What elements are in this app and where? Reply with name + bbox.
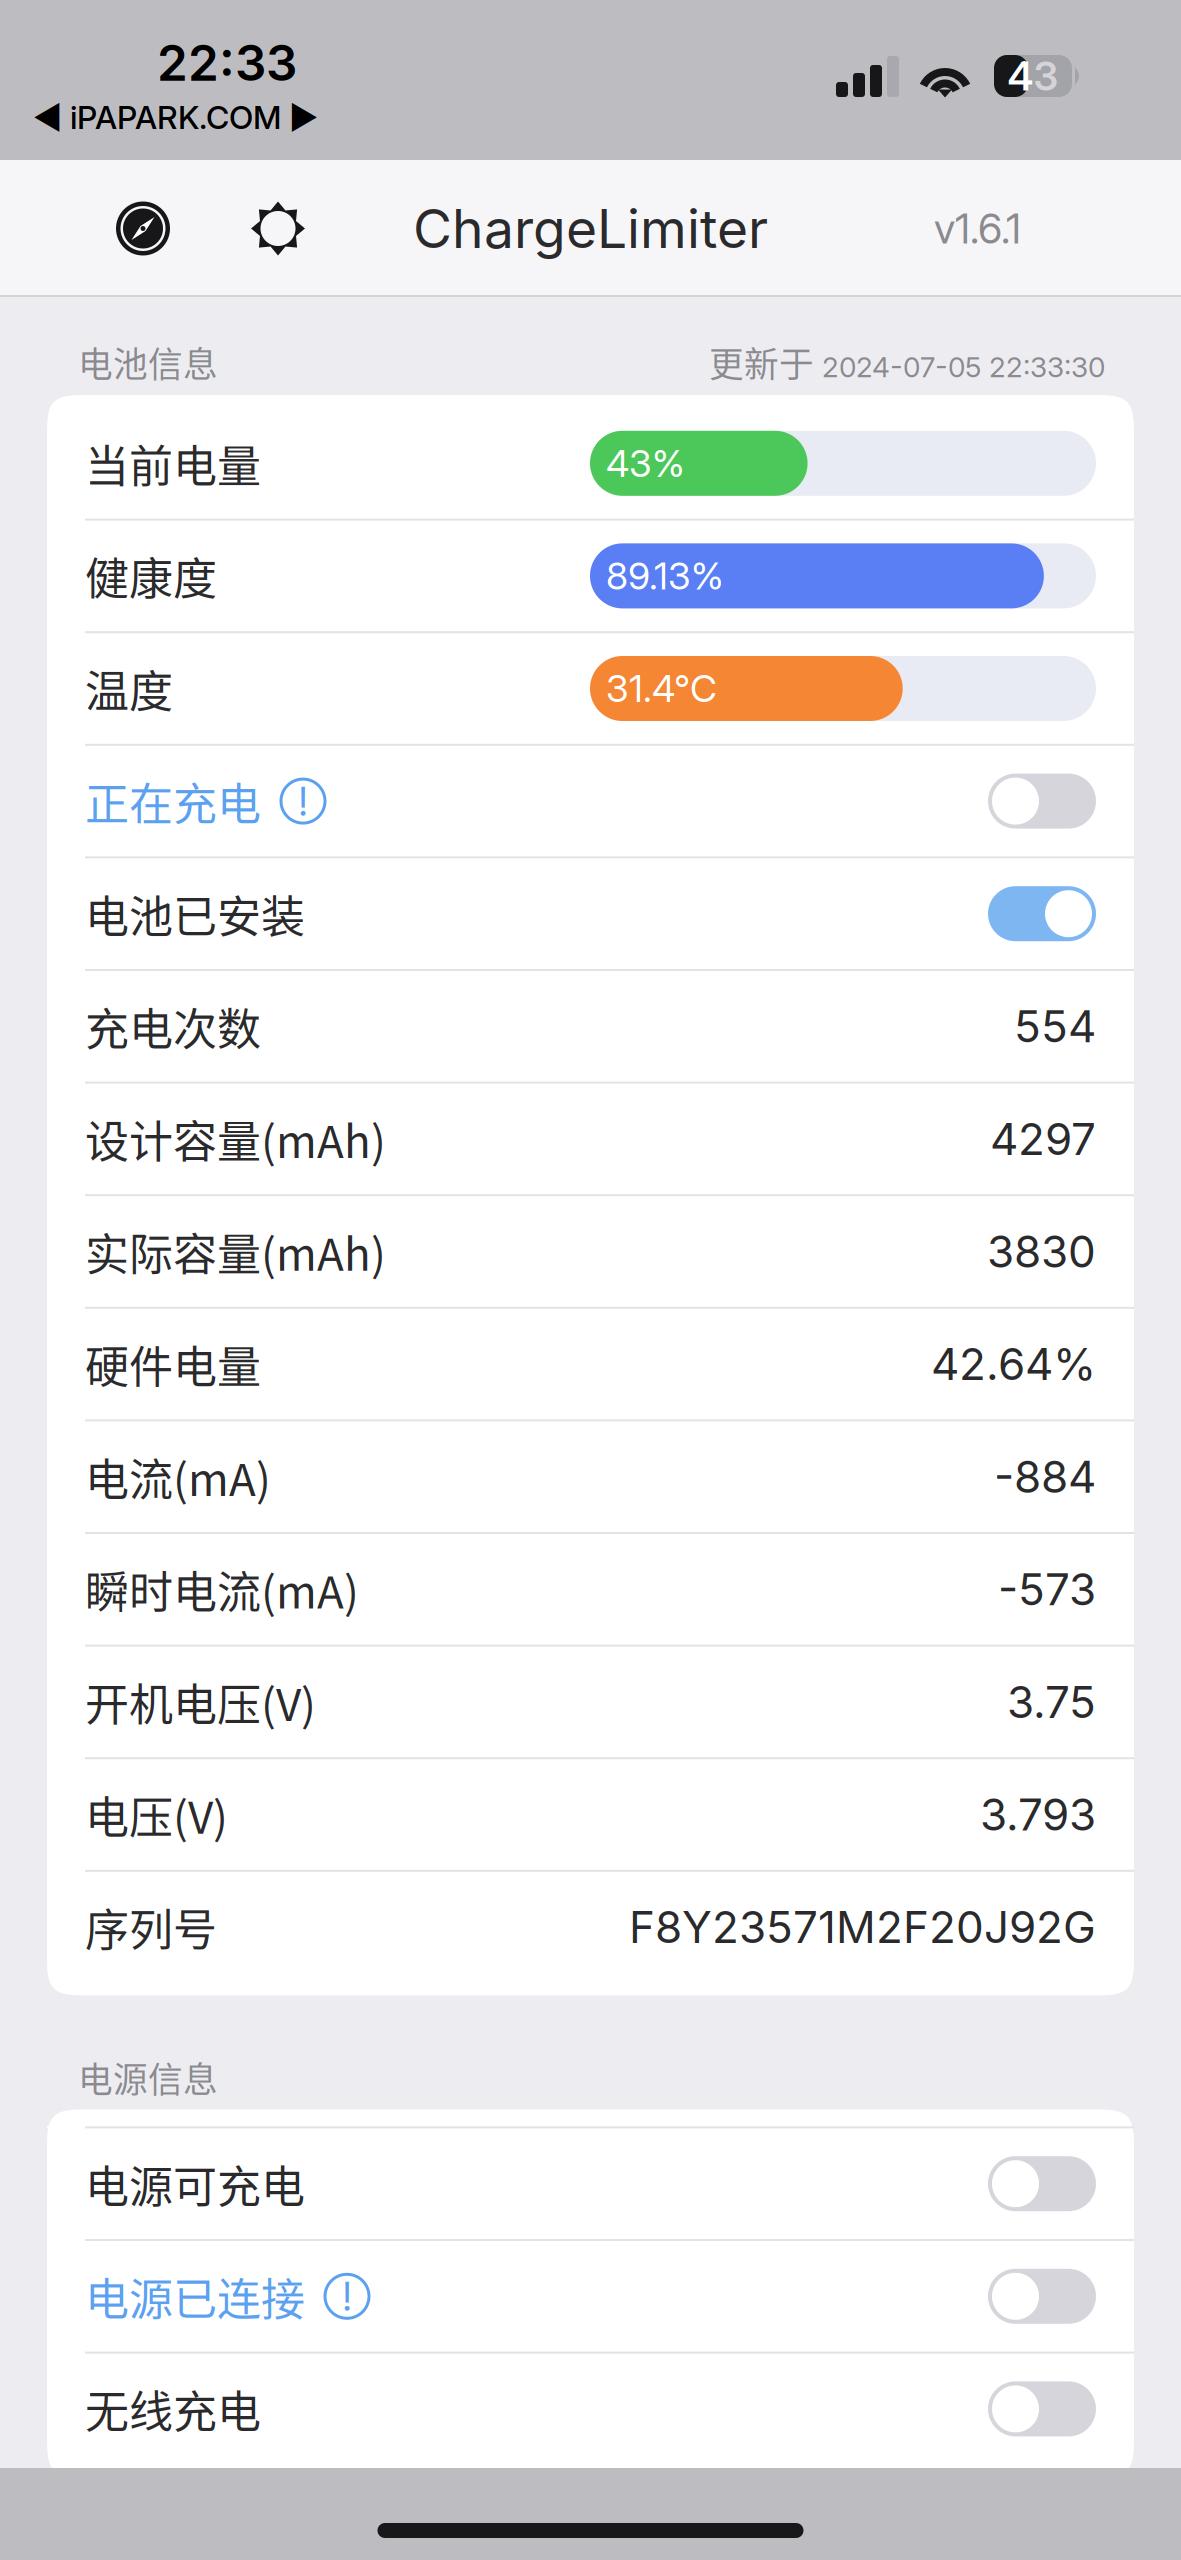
staticText: 电源已连接 xyxy=(85,2264,305,2328)
button[interactable]: 正在充电 xyxy=(47,746,1134,856)
staticText: 温度 xyxy=(85,657,173,720)
staticText: -884 xyxy=(994,1450,1096,1503)
button[interactable]: 电源可充电 xyxy=(47,2128,1134,2239)
staticText: 实际容量(mAh) xyxy=(85,1220,386,1283)
staticText: 序列号 xyxy=(85,1895,217,1959)
staticText: 瞬时电流(mA) xyxy=(85,1557,359,1621)
staticText: 设计容量(mAh) xyxy=(85,1107,386,1171)
staticText: 无线充电 xyxy=(85,2377,261,2441)
staticText: 22:33 xyxy=(157,33,297,93)
staticText: 更新于 xyxy=(709,337,814,387)
staticText: 电流(mA) xyxy=(85,1445,271,1508)
staticText: 43% xyxy=(606,441,685,486)
staticText: 42.64% xyxy=(931,1337,1096,1391)
button[interactable]: Browser xyxy=(90,168,196,288)
staticText: ! xyxy=(342,2272,351,2320)
staticText: 3830 xyxy=(987,1225,1096,1278)
staticText: 4 xyxy=(1007,52,1033,100)
staticText: 2024-07-05 22:33:30 xyxy=(814,350,1105,384)
button[interactable]: 无线充电 xyxy=(47,2354,1134,2464)
staticText: 电源信息 xyxy=(78,2052,218,2103)
staticText: ChargeLimiter xyxy=(413,196,768,261)
staticText: v1.6.1 xyxy=(934,203,1021,253)
staticText: 充电次数 xyxy=(85,994,261,1058)
staticText: 健康度 xyxy=(85,544,217,608)
staticText: F8Y23571M2F20J92G xyxy=(629,1900,1096,1954)
button[interactable]: 电池已安装 xyxy=(47,858,1134,969)
staticText: ◀ iPAPARK.COM ▶ xyxy=(33,98,318,137)
staticText: 电源可充电 xyxy=(85,2152,305,2215)
staticText: 开机电压(V) xyxy=(85,1670,316,1734)
staticText: 89.13% xyxy=(606,553,724,598)
button[interactable]: 电源已连接 xyxy=(47,2241,1134,2352)
staticText: -573 xyxy=(998,1563,1096,1616)
staticText: 电压(V) xyxy=(85,1783,228,1846)
staticText: 硬件电量 xyxy=(85,1332,261,1396)
staticText: 3.793 xyxy=(980,1788,1096,1841)
staticText: 3 xyxy=(1033,52,1058,100)
button[interactable]: Brightness xyxy=(225,168,331,288)
staticText: ! xyxy=(298,777,307,825)
staticText: 电池已安装 xyxy=(85,882,305,945)
staticText: 3.75 xyxy=(1007,1675,1096,1728)
staticText: 当前电量 xyxy=(85,431,261,495)
staticText: 554 xyxy=(1014,1000,1096,1053)
staticText: 电池信息 xyxy=(78,337,218,387)
staticText: 4297 xyxy=(990,1112,1096,1165)
staticText: 正在充电 xyxy=(85,769,261,833)
staticText: 31.4°C xyxy=(606,666,717,711)
